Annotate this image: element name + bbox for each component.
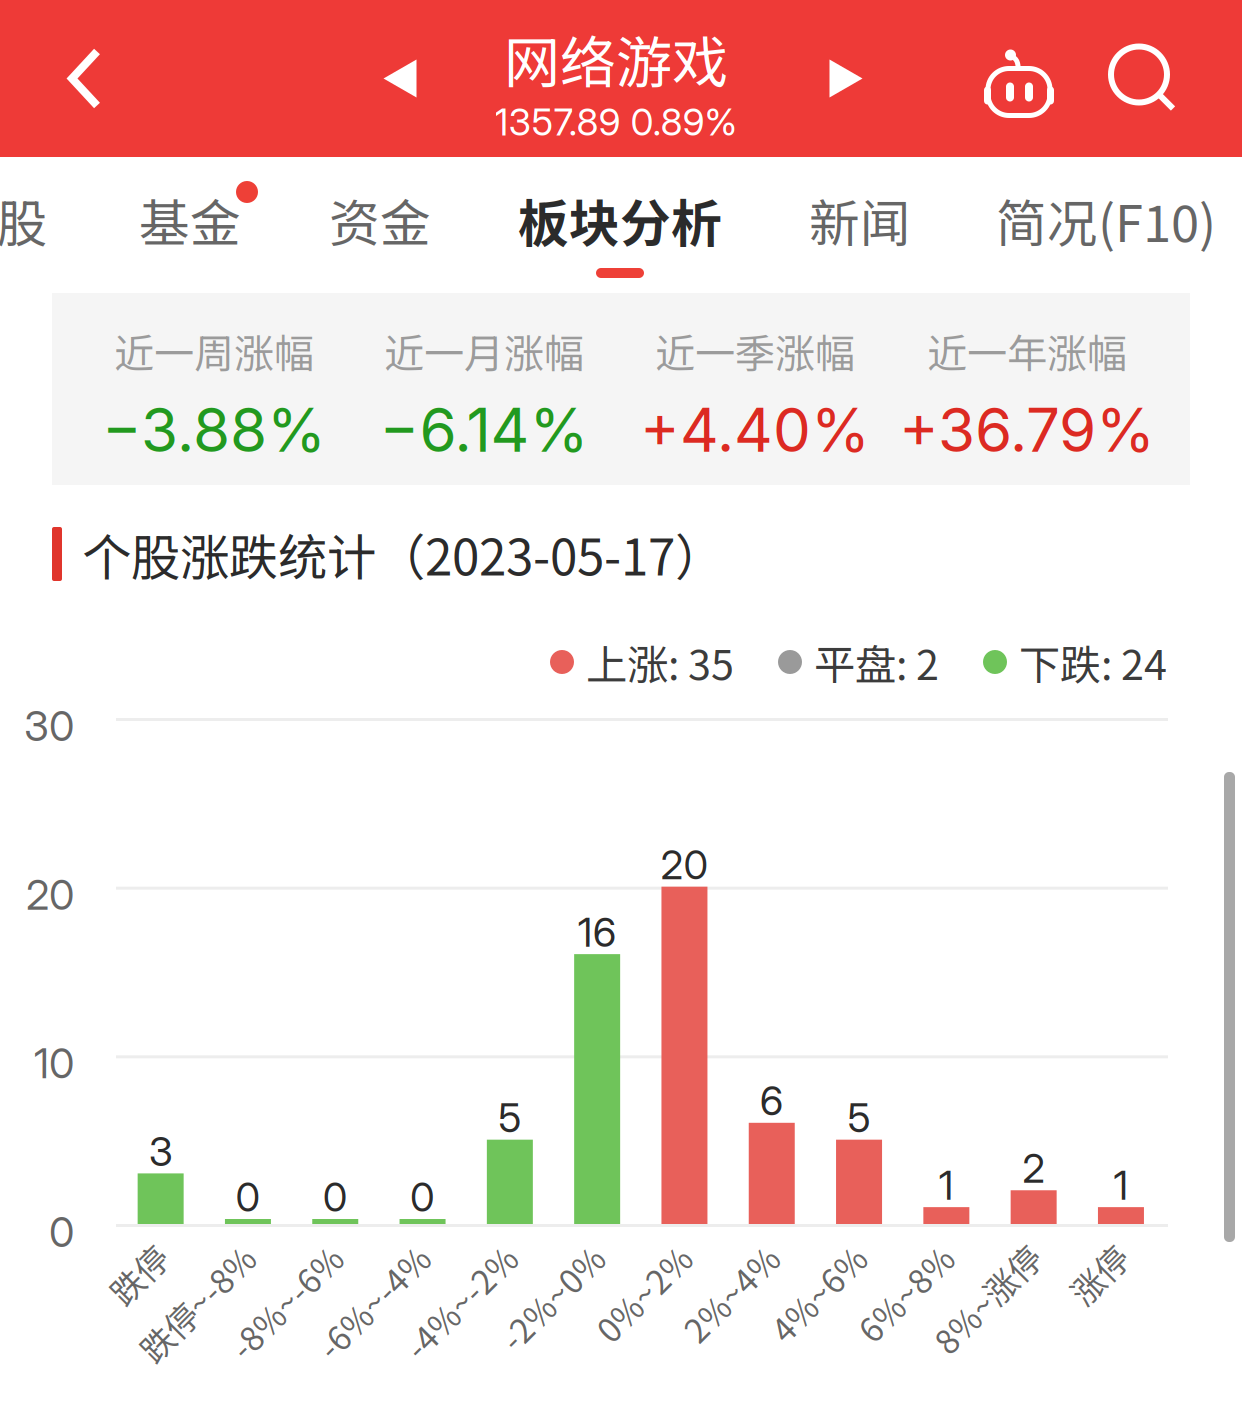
- staticText: 4%~6%: [785, 1333, 904, 1381]
- button[interactable]: Next sector: [786, 0, 906, 157]
- staticText: 近一周涨幅: [114, 322, 314, 380]
- staticText: +36.79%: [899, 394, 1155, 466]
- staticText: 6%~8%: [872, 1333, 991, 1381]
- staticText: 资金: [329, 183, 431, 257]
- staticText: 1: [1113, 1161, 1128, 1209]
- staticText: 8%~涨停: [944, 1333, 1079, 1381]
- staticText: -8%~-6%: [237, 1333, 380, 1381]
- staticText: 0: [49, 1207, 74, 1257]
- button[interactable]: Previous sector: [340, 0, 460, 157]
- staticText: 3: [149, 1127, 173, 1176]
- staticText: 2: [1022, 1144, 1045, 1192]
- staticText: -4%~-2%: [412, 1333, 555, 1381]
- staticText: 板块分析: [518, 183, 722, 257]
- staticText: 0: [410, 1173, 435, 1221]
- staticText: 10: [34, 1038, 74, 1088]
- button[interactable]: 新闻: [780, 157, 940, 295]
- staticText: 上涨: 35: [586, 632, 734, 692]
- button[interactable]: Search: [1080, 2, 1210, 159]
- staticText: 股: [0, 183, 47, 257]
- staticText: 下跌: 24: [1019, 632, 1167, 692]
- staticText: 基金: [139, 183, 241, 257]
- staticText: 20: [26, 870, 74, 920]
- staticText: -6%~-4%: [324, 1333, 467, 1381]
- staticText: 简况(F10): [996, 183, 1216, 257]
- staticText: 0: [235, 1173, 260, 1221]
- staticText: +4.40%: [640, 394, 870, 466]
- staticText: 30: [24, 701, 74, 751]
- staticText: 0%~2%: [610, 1333, 729, 1381]
- staticText: 1357.89 0.89%: [494, 99, 737, 145]
- button[interactable]: 板块分析: [480, 157, 760, 295]
- staticText: 近一季涨幅: [655, 322, 855, 380]
- button[interactable]: 基金: [110, 157, 270, 295]
- staticText: -2%~0%: [511, 1333, 642, 1381]
- staticText: 6: [760, 1077, 784, 1125]
- staticText: 网络游戏: [504, 18, 728, 99]
- staticText: 个股涨跌统计（2023-05-17）: [82, 518, 724, 590]
- button[interactable]: 股: [0, 157, 102, 295]
- staticText: 近一年涨幅: [927, 322, 1127, 380]
- staticText: 平盘: 2: [814, 632, 939, 692]
- button[interactable]: 简况(F10): [956, 157, 1242, 295]
- staticText: −6.14%: [379, 394, 588, 466]
- staticText: 近一月涨幅: [384, 322, 584, 380]
- button[interactable]: Back: [20, 0, 150, 157]
- staticText: 1: [939, 1161, 954, 1209]
- staticText: 16: [578, 908, 617, 956]
- staticText: 0: [323, 1173, 348, 1221]
- staticText: 跌停: [140, 1333, 206, 1381]
- staticText: 5: [498, 1093, 521, 1142]
- staticText: 20: [660, 840, 708, 889]
- button[interactable]: 资金: [300, 157, 460, 295]
- staticText: 2%~4%: [698, 1333, 817, 1381]
- button[interactable]: AI assistant: [954, 2, 1084, 159]
- staticText: −3.88%: [102, 394, 326, 466]
- staticText: 5: [847, 1093, 870, 1142]
- staticText: 跌停~-8%: [146, 1333, 293, 1381]
- staticText: 新闻: [809, 183, 911, 257]
